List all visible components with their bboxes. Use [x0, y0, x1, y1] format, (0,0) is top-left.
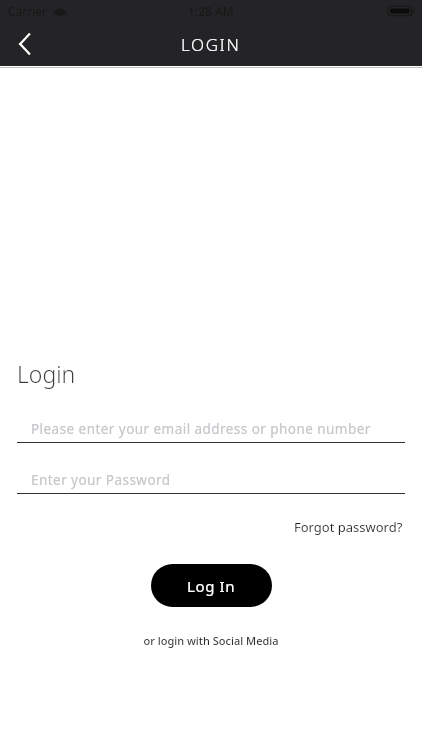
staticText: or login with Social Media — [143, 633, 279, 648]
staticText: Please enter your email address or phone… — [31, 420, 371, 438]
staticText: Enter your Password — [31, 471, 171, 489]
staticText: Login — [17, 358, 76, 389]
button[interactable]: Enter your Password — [17, 467, 405, 494]
staticText: Carrier — [8, 3, 48, 19]
staticText: 1:28 AM — [188, 3, 234, 19]
button[interactable]: Log In — [151, 564, 272, 607]
button[interactable]: Please enter your email address or phone… — [17, 416, 405, 443]
button[interactable]: Forgot password? — [292, 515, 405, 539]
button[interactable]: or login with Social Media — [139, 630, 283, 651]
staticText: LOGIN — [181, 33, 241, 56]
button[interactable]: Back — [0, 22, 48, 66]
staticText: Forgot password? — [294, 518, 403, 536]
staticText: Log In — [187, 576, 236, 596]
